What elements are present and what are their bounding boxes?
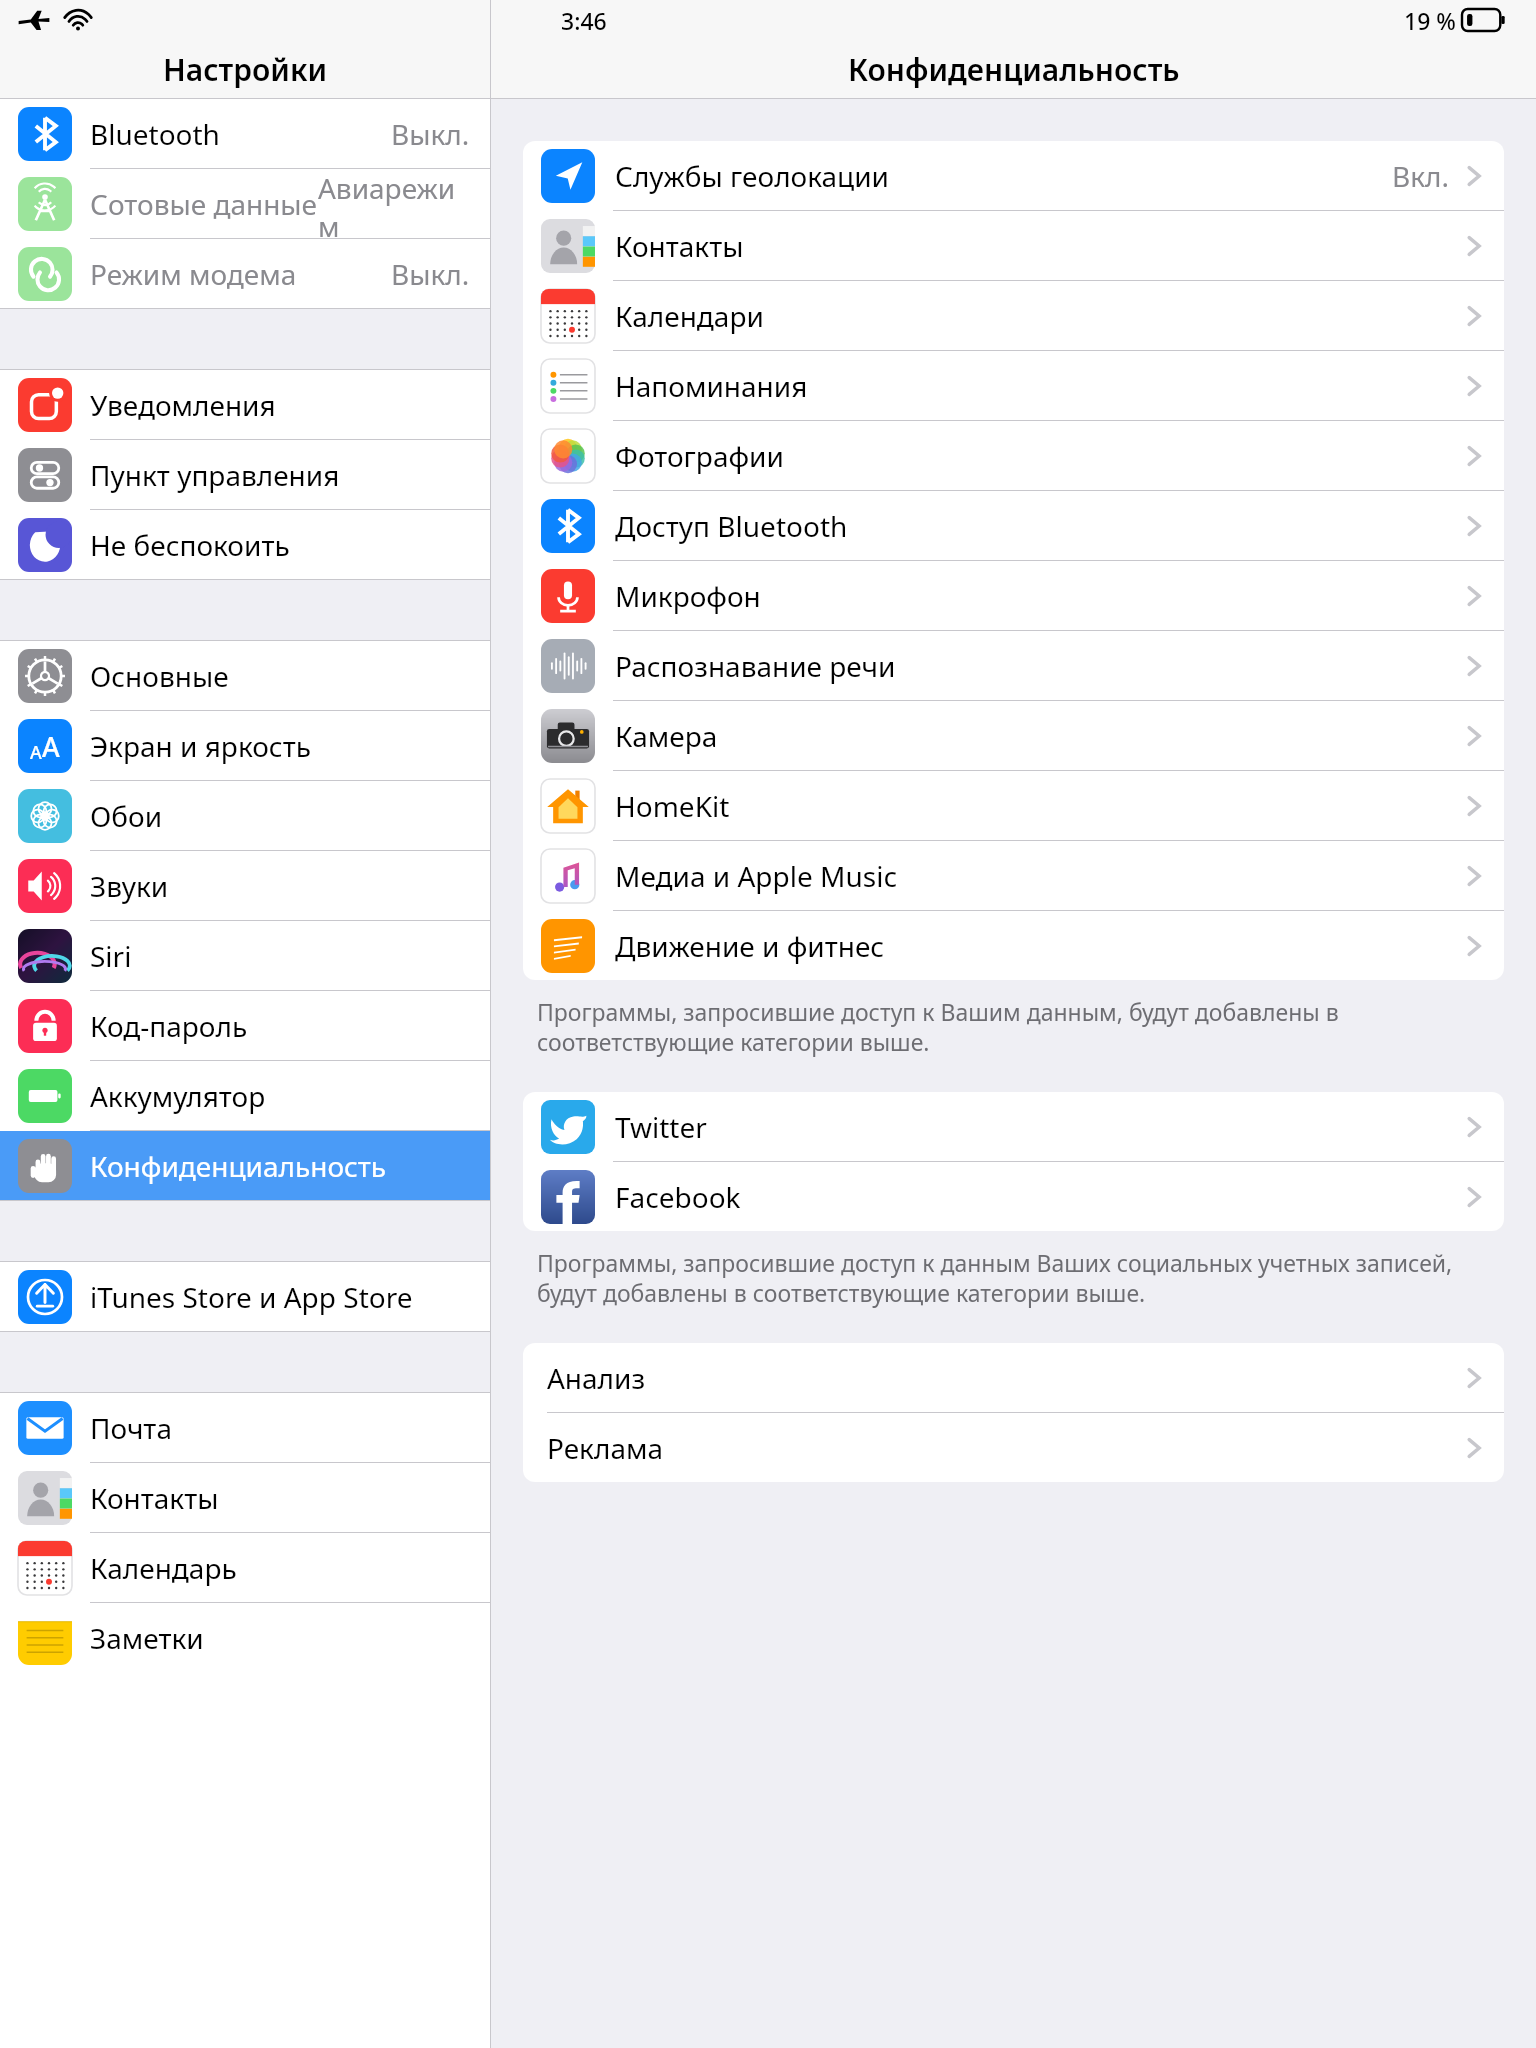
button[interactable]: Основные (0, 641, 490, 710)
button[interactable]: A (0, 711, 490, 780)
staticText: Доступ Bluetooth (615, 507, 848, 545)
button[interactable]: Почта (0, 1393, 490, 1462)
button[interactable]: Twitter (523, 1092, 1504, 1161)
staticText: Микрофон (615, 577, 761, 615)
staticText: Код-пароль (90, 1007, 248, 1045)
staticText: A (30, 740, 42, 765)
staticText: Анализ (547, 1359, 646, 1397)
staticText: Основные (90, 657, 229, 695)
staticText: Звуки (90, 867, 169, 905)
staticText: Не беспокоить (90, 526, 290, 564)
button[interactable]: Конфиденциальность (0, 1131, 490, 1200)
staticText: Фотографии (615, 437, 784, 475)
staticText: Сотовые данные (90, 185, 318, 223)
button[interactable]: Аккумулятор (0, 1061, 490, 1130)
button[interactable]: Код-пароль (0, 991, 490, 1060)
staticText: Twitter (615, 1108, 707, 1146)
staticText: Siri (90, 937, 132, 975)
button[interactable]: Режим модема (0, 239, 490, 308)
staticText: Контакты (90, 1479, 219, 1517)
button[interactable]: Фотографии (523, 421, 1504, 490)
staticText: Контакты (615, 227, 744, 265)
staticText: Распознавание речи (615, 647, 896, 685)
button[interactable]: Уведомления (0, 370, 490, 439)
button[interactable]: Доступ Bluetooth (523, 491, 1504, 560)
staticText: Facebook (615, 1178, 741, 1216)
staticText: Конфиденциальность (90, 1147, 387, 1185)
button[interactable]: Анализ (523, 1343, 1504, 1412)
staticText: HomeKit (615, 787, 730, 825)
button[interactable]: HomeKit (523, 771, 1504, 840)
staticText: Напоминания (615, 367, 808, 405)
staticText: Заметки (90, 1619, 204, 1657)
staticText: Движение и фитнес (615, 927, 885, 965)
staticText: Выкл. (391, 255, 470, 293)
staticText: iTunes Store и App Store (90, 1278, 413, 1316)
button[interactable]: Медиа и Apple Music (523, 841, 1504, 910)
button[interactable]: Движение и фитнес (523, 911, 1504, 980)
button[interactable]: Bluetooth (0, 99, 490, 168)
staticText: Аккумулятор (90, 1077, 266, 1115)
button[interactable]: Siri (0, 921, 490, 990)
staticText: A (42, 728, 60, 765)
staticText: 3:46 (561, 5, 607, 36)
staticText: Реклама (547, 1429, 664, 1467)
button[interactable]: Календарь (0, 1533, 490, 1602)
button[interactable]: Звуки (0, 851, 490, 920)
staticText: Службы геолокации (615, 157, 890, 195)
button[interactable]: Пункт управления (0, 440, 490, 509)
staticText: Программы, запросившие доступ к данным В… (537, 1247, 1490, 1309)
button[interactable]: Службы геолокации (523, 141, 1504, 210)
staticText: Bluetooth (90, 115, 220, 153)
button[interactable]: Распознавание речи (523, 631, 1504, 700)
button[interactable]: Камера (523, 701, 1504, 770)
button[interactable]: iTunes Store и App Store (0, 1262, 490, 1331)
button[interactable]: Микрофон (523, 561, 1504, 630)
staticText: Настройки (163, 49, 328, 90)
staticText: Экран и яркость (90, 727, 311, 765)
staticText: Обои (90, 797, 163, 835)
button[interactable]: Сотовые данные (0, 169, 490, 238)
staticText: Уведомления (90, 386, 276, 424)
staticText: Программы, запросившие доступ к Вашим да… (537, 996, 1490, 1058)
staticText: Календари (615, 297, 764, 335)
staticText: Режим модема (90, 255, 297, 293)
staticText: Выкл. (391, 115, 470, 153)
staticText: Конфиденциальность (848, 49, 1180, 90)
staticText: Медиа и Apple Music (615, 857, 897, 895)
button[interactable]: Заметки (0, 1603, 490, 1672)
button[interactable]: Напоминания (523, 351, 1504, 420)
staticText: Календарь (90, 1549, 237, 1587)
button[interactable]: Календари (523, 281, 1504, 350)
button[interactable]: Контакты (0, 1463, 490, 1532)
button[interactable]: Не беспокоить (0, 510, 490, 579)
button[interactable]: Facebook (523, 1162, 1504, 1231)
button[interactable]: Контакты (523, 211, 1504, 280)
staticText: Вкл. (1392, 157, 1450, 195)
staticText: Почта (90, 1409, 172, 1447)
staticText: 19 % (1404, 5, 1456, 36)
button[interactable]: Реклама (523, 1413, 1504, 1482)
button[interactable]: Обои (0, 781, 490, 850)
staticText: Пункт управления (90, 456, 340, 494)
staticText: Авиарежим (318, 169, 470, 238)
staticText: Камера (615, 717, 718, 755)
